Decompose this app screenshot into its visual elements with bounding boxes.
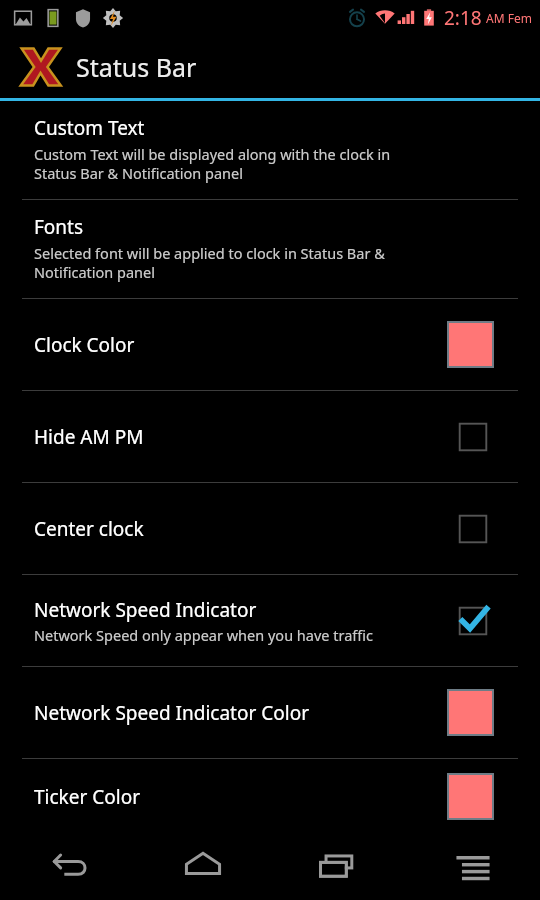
button[interactable]: App icon <box>0 36 540 98</box>
button[interactable]: Clock Color <box>0 299 540 390</box>
button[interactable]: Center clock <box>0 483 540 574</box>
staticText: Ticker Color <box>34 784 447 810</box>
button[interactable]: Custom Text <box>0 101 540 199</box>
staticText: Selected font will be applied to clock i… <box>34 243 385 282</box>
other: Unchecked <box>452 508 494 550</box>
staticText: Network Speed only appear when you have … <box>34 625 374 645</box>
button[interactable]: Home <box>135 834 270 900</box>
staticText: Fonts <box>34 214 84 240</box>
button[interactable]: Hide AM PM <box>0 391 540 482</box>
button[interactable]: Network Speed Indicator <box>0 575 540 666</box>
staticText: Hide AM PM <box>34 424 144 450</box>
staticText: Custom Text <box>34 115 145 141</box>
staticText: Clock Color <box>34 332 447 358</box>
button[interactable]: Menu <box>405 834 540 900</box>
staticText: Center clock <box>34 516 144 542</box>
button[interactable]: Ticker Color <box>0 759 540 834</box>
staticText: AM Fem <box>486 10 532 26</box>
staticText: Network Speed Indicator <box>34 597 257 623</box>
other: Checked <box>452 600 494 642</box>
button[interactable]: Back <box>0 834 135 900</box>
button[interactable]: Recents <box>270 834 405 900</box>
other: App icon <box>18 44 64 90</box>
staticText: Status Bar <box>76 50 197 84</box>
staticText: Network Speed Indicator Color <box>34 700 447 726</box>
button[interactable]: Network Speed Indicator Color <box>0 667 540 758</box>
button[interactable]: Fonts <box>0 200 540 298</box>
staticText: Custom Text will be displayed along with… <box>34 144 391 183</box>
other: Unchecked <box>452 416 494 458</box>
staticText: 2:18 <box>444 5 482 31</box>
